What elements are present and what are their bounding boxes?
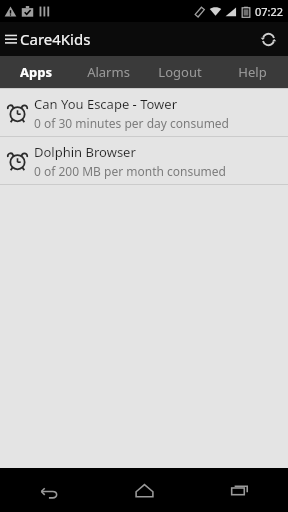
button[interactable]: Can You Escape - Tower <box>0 89 288 136</box>
button[interactable]: Logout <box>144 56 216 88</box>
staticText: Can You Escape - Tower <box>34 95 178 113</box>
button[interactable]: Open navigation menu <box>0 22 22 56</box>
button[interactable]: Dolphin Browser <box>0 137 288 184</box>
staticText: Dolphin Browser <box>34 143 136 161</box>
button[interactable]: Refresh <box>248 22 288 56</box>
button[interactable]: Alarms <box>72 56 144 88</box>
button[interactable]: Recent apps <box>192 468 288 512</box>
button[interactable]: Home <box>96 468 192 512</box>
button[interactable]: Help <box>216 56 288 88</box>
staticText: Alarms <box>87 63 130 81</box>
staticText: 07:22 <box>255 4 284 19</box>
staticText: 0 of 30 minutes per day consumed <box>34 115 230 131</box>
button[interactable]: Apps <box>0 56 72 88</box>
staticText: 0 of 200 MB per month consumed <box>34 163 226 179</box>
staticText: Logout <box>158 63 202 81</box>
staticText: Apps <box>20 63 52 81</box>
button[interactable]: Back <box>0 468 96 512</box>
staticText: Care4Kids <box>20 29 91 49</box>
staticText: Help <box>238 63 267 81</box>
